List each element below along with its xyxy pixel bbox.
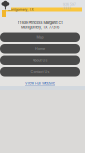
button[interactable]: View Full Website [25, 81, 55, 85]
button[interactable]: Map [0, 32, 80, 42]
staticText: Montgomery, TX 77316 [21, 25, 59, 29]
button[interactable]: About Us [0, 55, 80, 65]
staticText: Home [35, 47, 45, 51]
button[interactable]: Home [1, 0, 11, 10]
staticText: 11939 Princess Margaret Ct [17, 20, 62, 25]
staticText: Montgomery, TX [7, 8, 33, 11]
button[interactable]: Home [0, 44, 80, 53]
staticText: View Full Website [25, 81, 55, 85]
button[interactable]: Contact Us [0, 67, 80, 76]
staticText: About Us [32, 58, 47, 62]
staticText: 936 597 4444 [63, 3, 76, 10]
staticText: Contact Us [30, 70, 49, 74]
staticText: Map [36, 35, 43, 39]
